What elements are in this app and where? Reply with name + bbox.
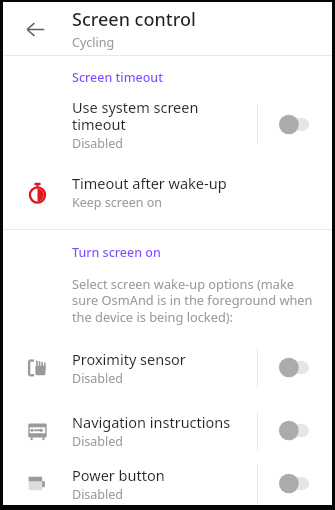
button[interactable]: Toggle Power button xyxy=(258,462,332,505)
button[interactable]: Toggle Navigation instructions xyxy=(258,399,332,462)
staticText: Timeout after wake-up xyxy=(72,173,227,193)
button[interactable]: Power button xyxy=(3,462,332,505)
staticText: Screen control xyxy=(72,7,196,32)
staticText: Proximity sensor xyxy=(72,349,186,369)
button[interactable]: Timeout after wake-up xyxy=(3,162,332,222)
staticText: Turn screen on xyxy=(72,244,161,261)
button[interactable]: Back xyxy=(15,9,55,49)
staticText: Select screen wake-up options (make sure… xyxy=(72,275,319,326)
staticText: Screen timeout xyxy=(72,69,163,86)
button[interactable]: Navigation instructions xyxy=(3,399,332,462)
button[interactable]: Toggle Proximity sensor xyxy=(258,336,332,399)
button[interactable]: Proximity sensor xyxy=(3,336,332,399)
staticText: Disabled xyxy=(72,433,124,450)
staticText: Disabled xyxy=(72,486,124,503)
staticText: Cycling xyxy=(72,34,115,51)
staticText: Disabled xyxy=(72,135,124,152)
staticText: Navigation instructions xyxy=(72,412,231,432)
staticText: Power button xyxy=(72,465,165,485)
staticText: Use system screen timeout xyxy=(72,97,247,134)
staticText: Disabled xyxy=(72,370,124,387)
button[interactable]: Toggle Use system screen timeout xyxy=(258,86,332,162)
staticText: Keep screen on xyxy=(72,194,163,211)
button[interactable]: Use system screen timeout xyxy=(3,86,332,162)
